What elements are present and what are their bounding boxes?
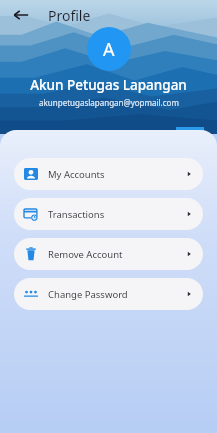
- staticText: Profile: [48, 6, 91, 25]
- staticText: Akun Petugas Lapangan: [30, 76, 187, 94]
- button[interactable]: Transactions: [14, 198, 203, 230]
- button[interactable]: My Accounts: [14, 158, 203, 190]
- staticText: Transactions: [48, 208, 105, 221]
- staticText: Change Password: [48, 288, 128, 301]
- staticText: A: [103, 37, 115, 62]
- staticText: My Accounts: [48, 168, 105, 181]
- button[interactable]: Back: [6, 0, 36, 30]
- button[interactable]: Remove Account: [14, 238, 203, 270]
- button[interactable]: A: [87, 27, 131, 71]
- staticText: Remove Account: [48, 248, 123, 261]
- button[interactable]: Change Password: [14, 278, 203, 310]
- staticText: akunpetugaslapangan@yopmail.com: [39, 97, 179, 108]
